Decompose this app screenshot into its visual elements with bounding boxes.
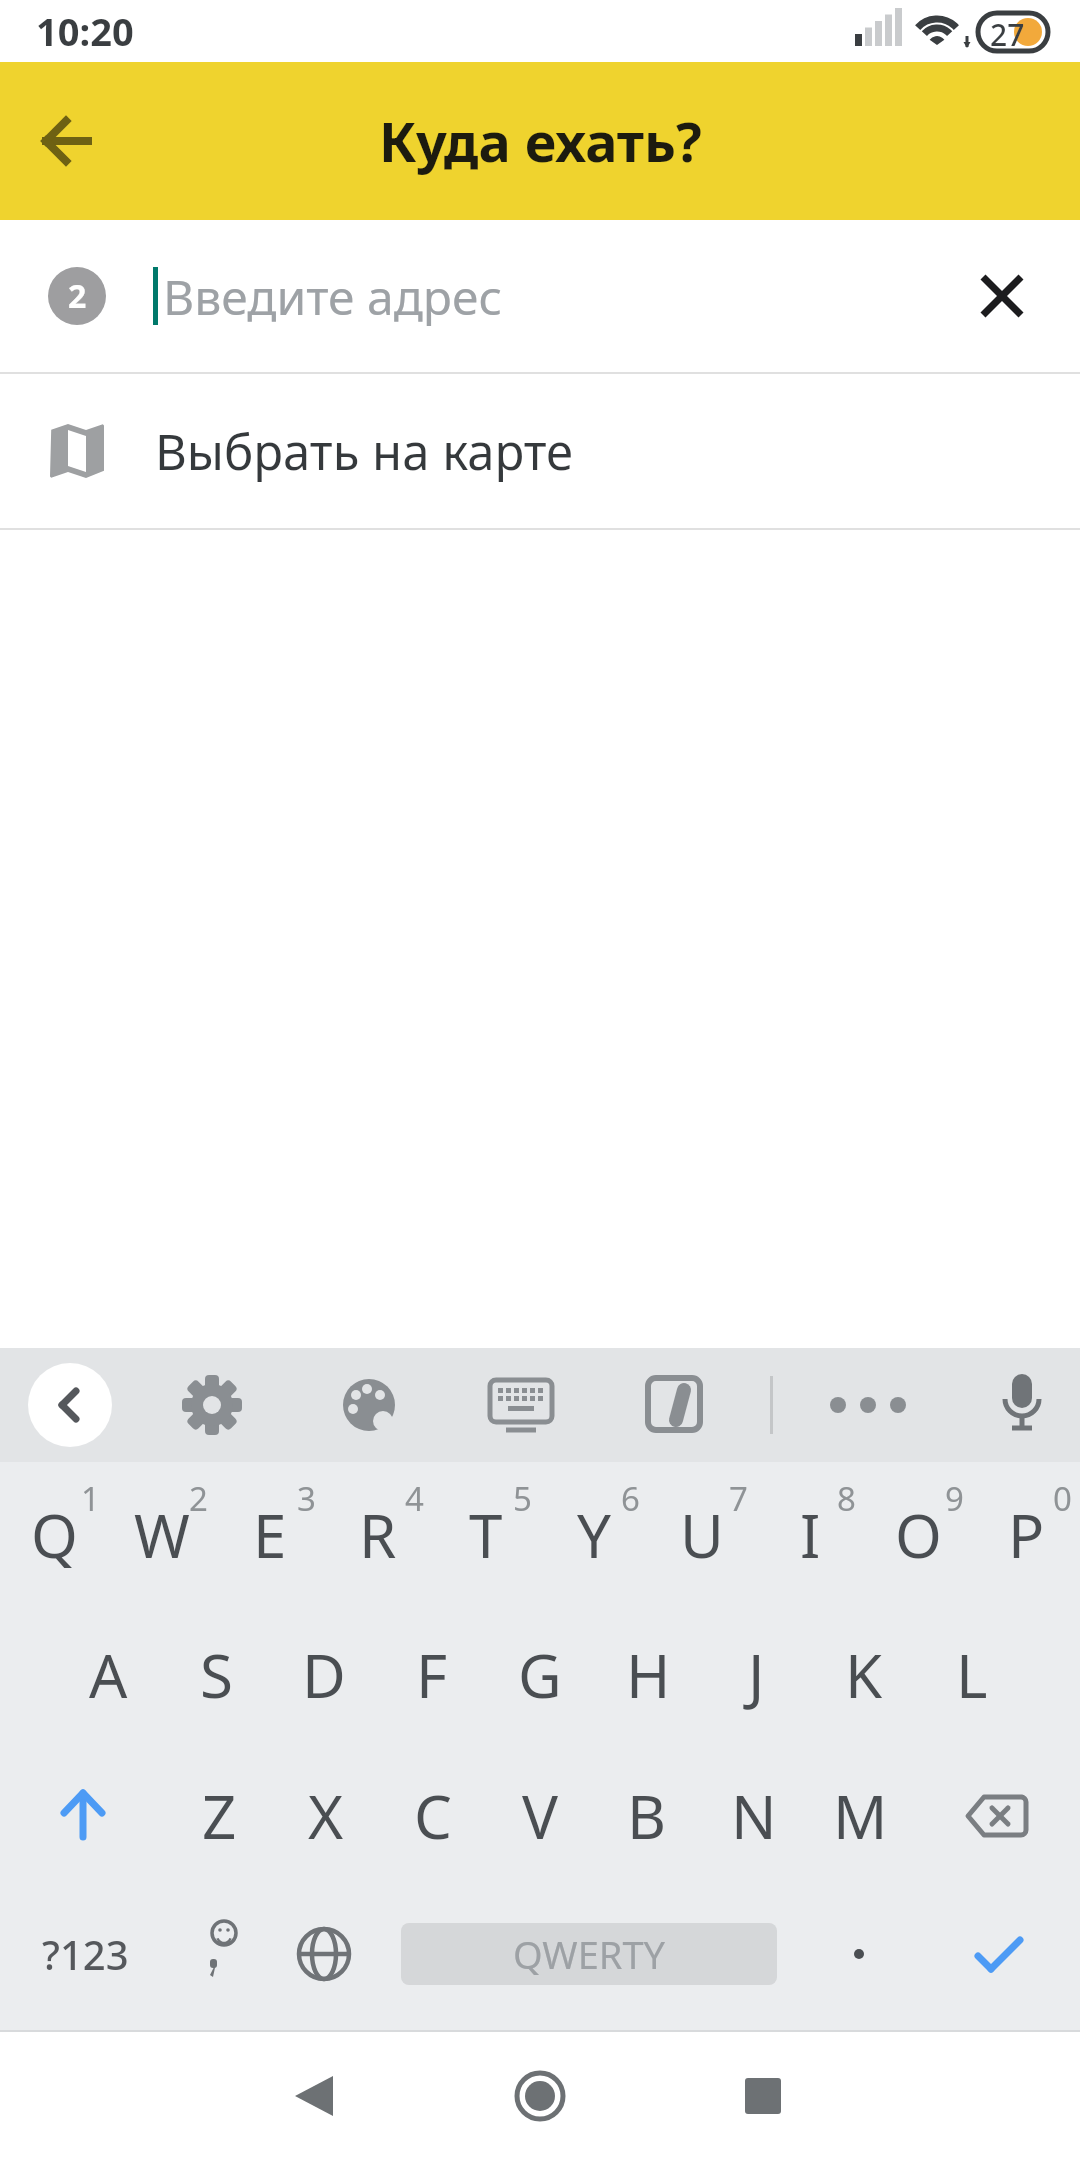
staticText: Q — [31, 1494, 78, 1576]
staticText: 1 — [81, 1476, 100, 1521]
button[interactable] — [830, 1367, 906, 1443]
staticText: 2 — [189, 1476, 208, 1521]
button[interactable]: R — [324, 1462, 432, 1604]
button[interactable] — [340, 1376, 398, 1434]
staticText: 6 — [621, 1476, 640, 1521]
staticText: J — [748, 1634, 765, 1716]
staticText: O — [895, 1494, 942, 1576]
staticText: 3 — [297, 1476, 316, 1521]
staticText: Куда ехать? — [379, 104, 702, 178]
staticText: 27 — [990, 14, 1025, 55]
button[interactable]: B — [593, 1746, 700, 1886]
button[interactable] — [295, 2076, 335, 2116]
button[interactable] — [488, 1372, 554, 1438]
button[interactable] — [918, 1886, 1080, 2022]
staticText: R — [359, 1494, 397, 1576]
staticText: 9 — [945, 1476, 964, 1521]
button[interactable]: F — [378, 1604, 486, 1746]
staticText: 5 — [513, 1476, 532, 1521]
button[interactable]: A — [54, 1604, 162, 1746]
button[interactable]: P — [972, 1462, 1080, 1604]
staticText: 2 — [68, 274, 87, 318]
staticText: W — [134, 1494, 190, 1576]
button[interactable]: 2 — [0, 220, 1080, 372]
staticText: H — [626, 1634, 671, 1716]
staticText: QWERTY — [513, 1928, 666, 1980]
button[interactable]: T — [432, 1462, 540, 1604]
staticText: G — [518, 1634, 562, 1716]
staticText: Z — [202, 1775, 237, 1857]
button[interactable] — [182, 1375, 242, 1435]
button[interactable] — [0, 1746, 166, 1886]
button[interactable]: C — [379, 1746, 486, 1886]
button[interactable] — [646, 1376, 704, 1434]
staticText: ?123 — [42, 1927, 129, 1981]
staticText: T — [469, 1494, 503, 1576]
staticText: 4 — [405, 1476, 424, 1521]
button[interactable]: S — [162, 1604, 270, 1746]
button[interactable]: H — [594, 1604, 702, 1746]
staticText: P — [1008, 1494, 1045, 1576]
button[interactable] — [1000, 1372, 1044, 1438]
button[interactable] — [800, 1886, 918, 2022]
staticText: S — [200, 1634, 233, 1716]
staticText: 10:20 — [36, 5, 134, 57]
staticText: A — [89, 1634, 128, 1716]
button[interactable]: Выбрать на карте — [0, 374, 1080, 528]
button[interactable] — [745, 2078, 781, 2114]
staticText: N — [731, 1775, 777, 1857]
button[interactable] — [270, 1886, 378, 2022]
staticText: I — [800, 1494, 821, 1576]
staticText: X — [308, 1775, 344, 1857]
staticText: D — [302, 1634, 346, 1716]
button[interactable]: O — [864, 1462, 972, 1604]
button[interactable]: E — [216, 1462, 324, 1604]
button[interactable] — [914, 1746, 1080, 1886]
button[interactable]: K — [810, 1604, 918, 1746]
button[interactable]: D — [270, 1604, 378, 1746]
button[interactable]: M — [807, 1746, 914, 1886]
button[interactable]: Z — [166, 1746, 272, 1886]
button[interactable]: I — [756, 1462, 864, 1604]
button[interactable]: W — [108, 1462, 216, 1604]
staticText: U — [680, 1494, 724, 1576]
button[interactable]: Q — [0, 1462, 108, 1604]
staticText: M — [833, 1775, 888, 1857]
button[interactable]: Y — [540, 1462, 648, 1604]
button[interactable] — [980, 274, 1024, 318]
button[interactable]: U — [648, 1462, 756, 1604]
button[interactable]: G — [486, 1604, 594, 1746]
button[interactable]: N — [700, 1746, 807, 1886]
button[interactable]: J — [702, 1604, 810, 1746]
button[interactable] — [514, 2070, 566, 2122]
staticText: 0 — [1053, 1476, 1072, 1521]
staticText: L — [956, 1634, 988, 1716]
staticText: E — [253, 1494, 287, 1576]
staticText: B — [627, 1775, 666, 1857]
staticText: 8 — [837, 1476, 856, 1521]
staticText: K — [845, 1634, 883, 1716]
button[interactable] — [44, 118, 90, 164]
button[interactable]: L — [918, 1604, 1026, 1746]
button[interactable]: QWERTY — [378, 1886, 800, 2022]
staticText: V — [522, 1775, 558, 1857]
button[interactable]: V — [486, 1746, 593, 1886]
button[interactable] — [170, 1886, 270, 2022]
staticText: F — [416, 1634, 448, 1716]
button[interactable]: X — [272, 1746, 379, 1886]
button[interactable] — [28, 1363, 112, 1447]
staticText: Введите адрес — [163, 264, 503, 329]
staticText: Выбрать на карте — [155, 418, 574, 485]
button[interactable]: ?123 — [0, 1886, 170, 2022]
staticText: 7 — [729, 1476, 748, 1521]
staticText: C — [414, 1775, 452, 1857]
staticText: Y — [577, 1494, 611, 1576]
